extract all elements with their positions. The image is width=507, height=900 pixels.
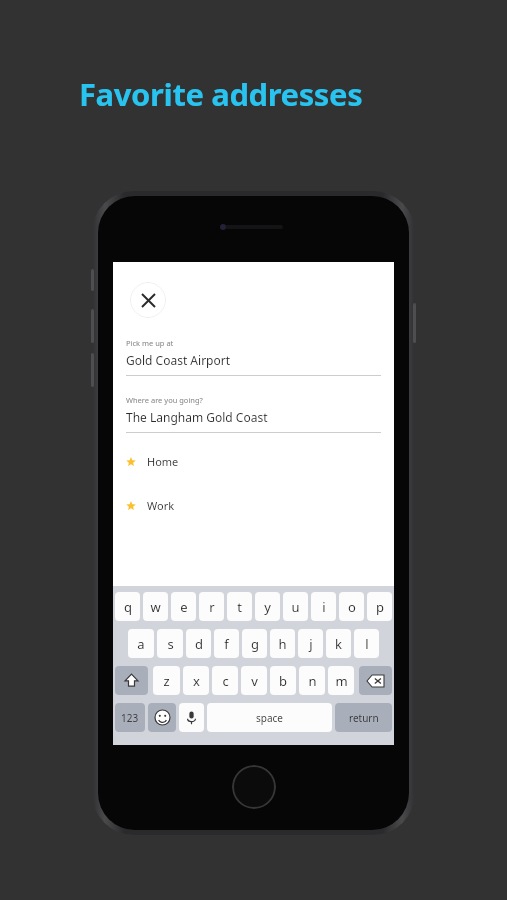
staticText: Work bbox=[147, 498, 175, 513]
button[interactable]: c bbox=[212, 666, 238, 695]
button[interactable]: r bbox=[199, 592, 224, 621]
button[interactable]: q bbox=[115, 592, 140, 621]
staticText: c bbox=[222, 672, 229, 690]
button[interactable]: Pick me up at bbox=[126, 338, 381, 376]
staticText: f bbox=[224, 635, 229, 653]
staticText: b bbox=[279, 672, 287, 690]
button[interactable]: t bbox=[227, 592, 252, 621]
staticText: l bbox=[365, 635, 369, 653]
button[interactable]: n bbox=[299, 666, 325, 695]
staticText: g bbox=[251, 635, 259, 653]
staticText: space bbox=[256, 711, 283, 725]
staticText: y bbox=[264, 598, 271, 616]
staticText: Gold Coast Airport bbox=[126, 352, 231, 368]
button[interactable]: Home bbox=[126, 454, 381, 469]
staticText: v bbox=[251, 672, 258, 690]
staticText: n bbox=[308, 672, 317, 690]
button[interactable]: i bbox=[311, 592, 336, 621]
button[interactable]: Backspace bbox=[359, 666, 392, 695]
button[interactable]: Shift bbox=[115, 666, 148, 695]
button[interactable]: s bbox=[157, 629, 183, 658]
button[interactable]: l bbox=[354, 629, 379, 658]
button[interactable]: h bbox=[270, 629, 295, 658]
staticText: d bbox=[195, 635, 203, 653]
button[interactable]: Emoji bbox=[148, 703, 176, 732]
staticText: e bbox=[180, 598, 188, 616]
button[interactable]: x bbox=[183, 666, 209, 695]
button[interactable]: p bbox=[367, 592, 392, 621]
staticText: t bbox=[237, 598, 242, 616]
button[interactable]: return bbox=[335, 703, 392, 732]
button[interactable]: u bbox=[283, 592, 308, 621]
staticText: The Langham Gold Coast bbox=[126, 409, 268, 425]
staticText: w bbox=[150, 598, 161, 616]
button[interactable]: k bbox=[326, 629, 351, 658]
staticText: x bbox=[193, 672, 200, 690]
staticText: 123 bbox=[121, 711, 139, 725]
button[interactable]: f bbox=[214, 629, 239, 658]
other: Home button bbox=[232, 765, 276, 809]
staticText: q bbox=[124, 598, 132, 616]
button[interactable]: Work bbox=[126, 498, 381, 513]
staticText: Where are you going? bbox=[126, 395, 203, 405]
button[interactable]: o bbox=[339, 592, 364, 621]
staticText: Home bbox=[147, 454, 179, 469]
staticText: o bbox=[348, 598, 356, 616]
button[interactable]: z bbox=[153, 666, 180, 695]
button[interactable]: b bbox=[270, 666, 296, 695]
button[interactable]: space bbox=[207, 703, 332, 732]
staticText: m bbox=[335, 672, 348, 690]
staticText: s bbox=[167, 635, 174, 653]
staticText: a bbox=[137, 635, 145, 653]
staticText: h bbox=[278, 635, 287, 653]
button[interactable]: m bbox=[328, 666, 354, 695]
button[interactable]: Where are you going? bbox=[126, 395, 381, 433]
button[interactable]: a bbox=[128, 629, 154, 658]
button[interactable]: Dictate bbox=[179, 703, 204, 732]
button[interactable]: Close bbox=[130, 282, 166, 318]
staticText: p bbox=[376, 598, 384, 616]
button[interactable]: v bbox=[241, 666, 267, 695]
button[interactable]: w bbox=[143, 592, 168, 621]
button[interactable]: 123 bbox=[115, 703, 145, 732]
button[interactable]: g bbox=[242, 629, 267, 658]
staticText: Pick me up at bbox=[126, 338, 174, 348]
staticText: i bbox=[322, 598, 326, 616]
button[interactable]: e bbox=[171, 592, 196, 621]
staticText: k bbox=[335, 635, 342, 653]
staticText: u bbox=[291, 598, 300, 616]
staticText: j bbox=[309, 635, 313, 653]
button[interactable]: y bbox=[255, 592, 280, 621]
staticText: z bbox=[163, 672, 170, 690]
staticText: Favorite addresses bbox=[79, 73, 363, 115]
staticText: r bbox=[209, 598, 215, 616]
button[interactable]: j bbox=[298, 629, 323, 658]
staticText: return bbox=[349, 711, 379, 725]
button[interactable]: d bbox=[186, 629, 211, 658]
